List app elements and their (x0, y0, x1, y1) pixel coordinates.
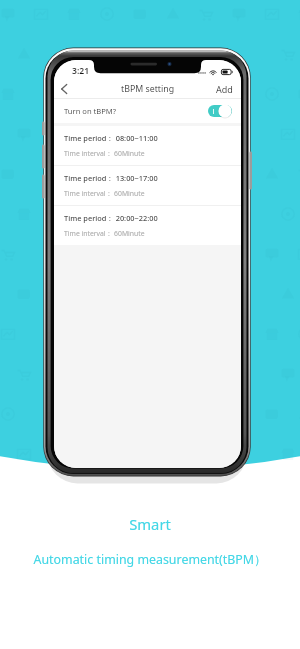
button[interactable]: Back (54, 79, 73, 98)
staticText: Time period： 20:00~22:00 (64, 213, 158, 223)
staticText: Add (216, 83, 233, 95)
button[interactable]: Toggle tBPM (208, 104, 232, 118)
staticText: 3:21 (72, 65, 90, 77)
button[interactable]: Time period： 20:00~22:00 (54, 206, 241, 245)
staticText: Time period： 08:00~11:00 (64, 133, 158, 143)
staticText: Time interval： 60Minute (64, 229, 145, 238)
button[interactable]: Time period： 13:00~17:00 (54, 166, 241, 205)
button[interactable]: Time period： 08:00~11:00 (54, 126, 241, 165)
staticText: Time interval： 60Minute (64, 189, 145, 198)
staticText: Time period： 13:00~17:00 (64, 173, 158, 183)
staticText: Automatic timing measurement(tBPM） (0, 551, 300, 568)
button[interactable]: Turn on tBPM? (54, 99, 241, 123)
staticText: Turn on tBPM? (64, 106, 117, 116)
staticText: Smart (0, 514, 300, 534)
button[interactable]: Add (208, 80, 241, 98)
staticText: Time interval： 60Minute (64, 149, 145, 158)
staticText: tBPM setting (121, 83, 175, 95)
